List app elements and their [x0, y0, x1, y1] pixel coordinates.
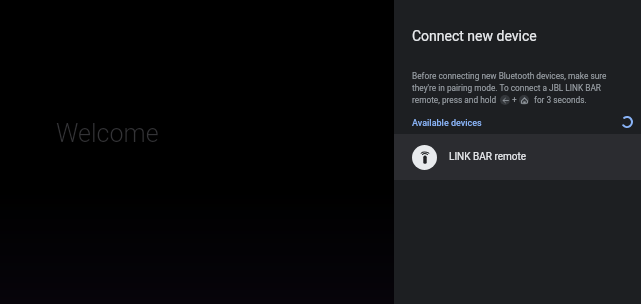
staticText: they're in pairing mode. To connect a JB… — [412, 83, 601, 93]
button[interactable]: LINK BAR remote — [394, 134, 641, 180]
staticText: for 3 seconds. — [534, 95, 587, 105]
staticText: remote, press and hold — [412, 95, 497, 105]
staticText: Before connecting new Bluetooth devices,… — [412, 71, 607, 81]
button[interactable]: Available devices — [394, 112, 641, 134]
staticText: + — [512, 95, 517, 105]
staticText: LINK BAR remote — [449, 151, 527, 163]
staticText: Available devices — [412, 118, 482, 129]
other: Searching for devices — [622, 117, 632, 127]
staticText: Connect new device — [412, 28, 537, 44]
staticText: Welcome — [56, 119, 159, 148]
